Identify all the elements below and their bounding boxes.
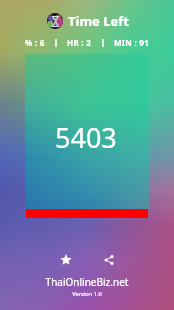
- staticText: MIN : 91: [114, 37, 150, 48]
- staticText: % : 6: [25, 37, 45, 48]
- staticText: ThaiOnlineBiz.net: [0, 275, 174, 289]
- staticText: HR : 2: [67, 37, 92, 48]
- button[interactable]: Rate app: [54, 248, 78, 272]
- staticText: 5403: [55, 119, 117, 156]
- staticText: Version 1.0: [0, 290, 174, 298]
- button[interactable]: Share: [97, 248, 121, 272]
- staticText: Time Left: [68, 12, 129, 29]
